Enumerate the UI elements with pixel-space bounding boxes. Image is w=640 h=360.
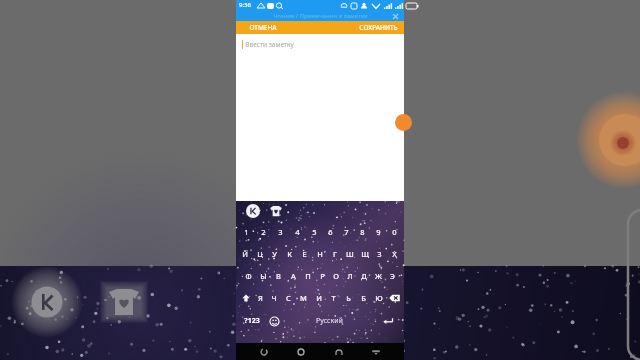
- staticText: О: [333, 271, 339, 281]
- staticText: Д: [361, 271, 367, 281]
- button[interactable]: Back: [329, 343, 349, 360]
- button[interactable]: Ж: [371, 265, 385, 287]
- button[interactable]: Л: [343, 265, 357, 287]
- button[interactable]: 7: [338, 221, 354, 243]
- button[interactable]: ОТМЕНА: [236, 21, 320, 34]
- button[interactable]: Ь: [341, 287, 356, 309]
- button[interactable]: 2: [255, 221, 272, 243]
- staticText: 7: [344, 227, 349, 237]
- button[interactable]: Щ: [357, 243, 372, 265]
- staticText: Ж: [375, 271, 382, 281]
- button[interactable]: Close: [390, 11, 400, 21]
- staticText: Т: [331, 293, 336, 303]
- staticText: К: [287, 249, 292, 259]
- button[interactable]: Б: [356, 287, 371, 309]
- staticText: В: [276, 271, 281, 281]
- button[interactable]: 9: [370, 221, 386, 243]
- button[interactable]: А: [286, 265, 301, 287]
- button[interactable]: Hide keyboard: [366, 343, 386, 360]
- staticText: П: [305, 271, 311, 281]
- staticText: 8: [360, 227, 365, 237]
- button[interactable]: О: [329, 265, 343, 287]
- button[interactable]: Ш: [342, 243, 357, 265]
- staticText: У: [272, 249, 277, 259]
- button[interactable]: Г: [327, 243, 342, 265]
- button[interactable]: Add: [395, 114, 412, 131]
- button[interactable]: И: [311, 287, 326, 309]
- staticText: Г: [333, 249, 337, 259]
- button[interactable]: 1: [238, 221, 255, 243]
- staticText: 4: [295, 227, 300, 237]
- staticText: Русский: [316, 316, 343, 326]
- staticText: Х: [392, 249, 397, 259]
- staticText: Ф: [245, 271, 252, 281]
- button[interactable]: П: [301, 265, 315, 287]
- button[interactable]: Я: [253, 287, 267, 309]
- button[interactable]: С: [281, 287, 296, 309]
- button[interactable]: ?123: [239, 309, 264, 333]
- button[interactable]: Ч: [267, 287, 281, 309]
- staticText: Н: [317, 249, 323, 259]
- staticText: Ш: [346, 249, 354, 259]
- button[interactable]: Е: [297, 243, 312, 265]
- staticText: Ю: [375, 293, 383, 303]
- button[interactable]: З: [372, 243, 387, 265]
- button[interactable]: К: [282, 243, 297, 265]
- button[interactable]: Keyboard theme: [246, 204, 260, 218]
- button[interactable]: Stickers: [269, 204, 283, 218]
- button[interactable]: 8: [354, 221, 370, 243]
- staticText: 9:36: [239, 1, 251, 9]
- button[interactable]: Ф: [241, 265, 256, 287]
- staticText: 2: [261, 227, 266, 237]
- staticText: Ы: [260, 271, 267, 281]
- button[interactable]: В: [271, 265, 286, 287]
- button[interactable]: 5: [306, 221, 322, 243]
- button[interactable]: Backspace: [386, 287, 402, 309]
- button[interactable]: 6: [322, 221, 338, 243]
- staticText: Ь: [346, 293, 351, 303]
- button[interactable]: 3: [272, 221, 289, 243]
- staticText: Я: [258, 293, 263, 303]
- staticText: Чтение / Примечания и заметки: [273, 12, 368, 20]
- button[interactable]: Home: [291, 343, 311, 360]
- staticText: Р: [320, 271, 325, 281]
- staticText: С: [286, 293, 291, 303]
- button[interactable]: Ю: [371, 287, 386, 309]
- button[interactable]: Enter: [374, 309, 401, 333]
- staticText: ОТМЕНА: [249, 23, 277, 32]
- staticText: 6: [328, 227, 333, 237]
- button[interactable]: Н: [312, 243, 327, 265]
- button[interactable]: 0: [386, 221, 402, 243]
- button[interactable]: Recent apps: [254, 343, 274, 360]
- staticText: А: [291, 271, 296, 281]
- staticText: М: [300, 293, 307, 303]
- staticText: 0: [392, 227, 397, 237]
- button[interactable]: Р: [315, 265, 329, 287]
- staticText: ?123: [244, 316, 260, 326]
- button[interactable]: М: [296, 287, 311, 309]
- button[interactable]: Т: [326, 287, 341, 309]
- staticText: 9: [376, 227, 381, 237]
- staticText: 1: [244, 227, 249, 237]
- staticText: Э: [390, 271, 395, 281]
- button[interactable]: Emoji: [264, 309, 284, 333]
- button[interactable]: Х: [387, 243, 402, 265]
- staticText: Е: [302, 249, 307, 259]
- button[interactable]: У: [267, 243, 282, 265]
- button[interactable]: СОХРАНИТЬ: [320, 21, 404, 34]
- button[interactable]: Русский: [284, 309, 374, 333]
- button[interactable]: Д: [357, 265, 371, 287]
- staticText: И: [316, 293, 322, 303]
- staticText: Ч: [271, 293, 277, 303]
- button[interactable]: Чтение / Примечания и заметки: [236, 10, 404, 21]
- staticText: Щ: [361, 249, 369, 259]
- button[interactable]: Й: [238, 243, 252, 265]
- staticText: Б: [361, 293, 366, 303]
- button[interactable]: Ц: [252, 243, 267, 265]
- button[interactable]: Ы: [256, 265, 271, 287]
- staticText: Л: [347, 271, 353, 281]
- button[interactable]: 4: [289, 221, 306, 243]
- button[interactable]: Э: [385, 265, 399, 287]
- staticText: 5: [312, 227, 317, 237]
- button[interactable]: Shift: [238, 287, 253, 309]
